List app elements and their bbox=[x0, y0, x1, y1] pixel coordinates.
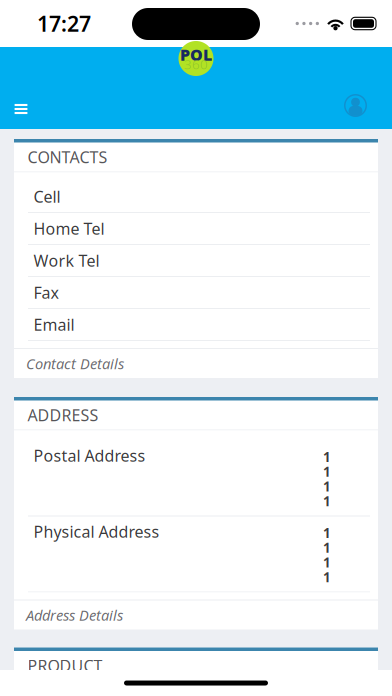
staticText: PRODUCT bbox=[27, 655, 102, 676]
staticText: 1 bbox=[323, 477, 331, 495]
staticText: 1 bbox=[323, 539, 331, 556]
button[interactable]: Contact Details bbox=[14, 349, 378, 378]
staticText: 1 bbox=[323, 448, 331, 466]
button[interactable]: Cell bbox=[14, 181, 378, 213]
staticText: POL bbox=[180, 44, 212, 65]
staticText: 1 bbox=[323, 553, 331, 571]
staticText: 1 bbox=[323, 568, 331, 586]
staticText: 360 bbox=[184, 55, 208, 73]
staticText: Cell bbox=[33, 186, 60, 207]
staticText: Fax bbox=[33, 282, 58, 303]
staticText: Work Tel bbox=[33, 250, 99, 271]
staticText: ADDRESS bbox=[27, 404, 98, 426]
staticText: 1 bbox=[323, 463, 331, 480]
staticText: Physical Address bbox=[33, 521, 159, 542]
button[interactable]: Work Tel bbox=[14, 245, 378, 277]
staticText: 1 bbox=[323, 492, 331, 510]
button[interactable]: Physical Address bbox=[14, 516, 378, 592]
staticText: Email bbox=[33, 314, 74, 335]
button[interactable]: Fax bbox=[14, 277, 378, 309]
staticText: Home Tel bbox=[33, 218, 104, 239]
button[interactable]: Address Details bbox=[14, 600, 378, 629]
button[interactable]: Email bbox=[14, 309, 378, 341]
staticText: CONTACTS bbox=[27, 146, 107, 168]
button[interactable]: Account bbox=[334, 86, 377, 129]
button[interactable]: Menu bbox=[0, 86, 42, 129]
staticText: Postal Address bbox=[33, 445, 145, 466]
staticText: 17:27 bbox=[37, 9, 91, 38]
staticText: 1 bbox=[323, 524, 331, 542]
button[interactable]: Postal Address bbox=[14, 440, 378, 516]
button[interactable]: Home Tel bbox=[14, 213, 378, 245]
staticText: Contact Details bbox=[26, 354, 124, 373]
staticText: Address Details bbox=[26, 605, 123, 625]
